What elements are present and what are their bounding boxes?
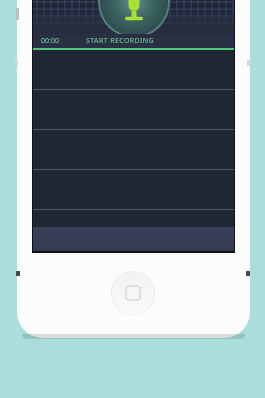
button[interactable]: Record [98, 0, 170, 38]
staticText: 00:00 [41, 36, 59, 46]
button[interactable]: 00:00 [33, 34, 234, 48]
button[interactable]: Home [111, 271, 155, 315]
staticText: START RECORDING [86, 36, 155, 46]
button[interactable] [33, 50, 234, 90]
button[interactable] [33, 170, 234, 210]
button[interactable] [33, 90, 234, 130]
button[interactable] [33, 130, 234, 170]
button[interactable] [33, 210, 234, 250]
